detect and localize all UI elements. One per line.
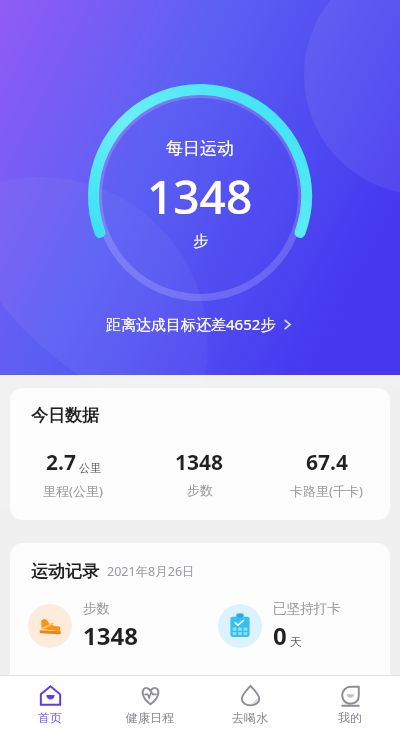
staticText: 2.7 <box>46 448 76 477</box>
staticText: 已坚持打卡 <box>273 600 341 617</box>
staticText: 67.4 <box>306 448 348 477</box>
button[interactable]: 距离达成目标还差4652步 <box>96 310 304 338</box>
staticText: 步数 <box>187 482 213 498</box>
staticText: 公里 <box>79 461 101 475</box>
staticText: 1348 <box>147 165 253 228</box>
button[interactable]: 去喝水 <box>200 676 300 733</box>
button[interactable]: 今日数据 <box>10 388 390 520</box>
staticText: 每日运动 <box>166 138 234 159</box>
button[interactable]: 运动记录 <box>10 543 390 693</box>
staticText: 步 <box>193 232 208 251</box>
staticText: 1348 <box>83 619 138 652</box>
staticText: 步数 <box>83 600 110 617</box>
staticText: 卡路里(千卡) <box>290 482 363 500</box>
staticText: 健康日程 <box>126 710 174 725</box>
staticText: 天 <box>290 634 302 649</box>
staticText: 首页 <box>38 710 62 725</box>
staticText: 2021年8月26日 <box>107 563 195 580</box>
staticText: 我的 <box>338 710 362 725</box>
button[interactable]: 我的 <box>300 676 400 733</box>
button[interactable]: 健康日程 <box>100 676 200 733</box>
staticText: 0 <box>273 619 287 652</box>
staticText: 去喝水 <box>232 710 268 725</box>
button[interactable]: 首页 <box>0 676 100 733</box>
staticText: 1348 <box>175 448 224 477</box>
staticText: 距离达成目标还差4652步 <box>106 314 276 334</box>
staticText: 运动记录 <box>31 561 99 582</box>
staticText: 今日数据 <box>31 405 99 426</box>
staticText: 里程(公里) <box>43 482 103 500</box>
